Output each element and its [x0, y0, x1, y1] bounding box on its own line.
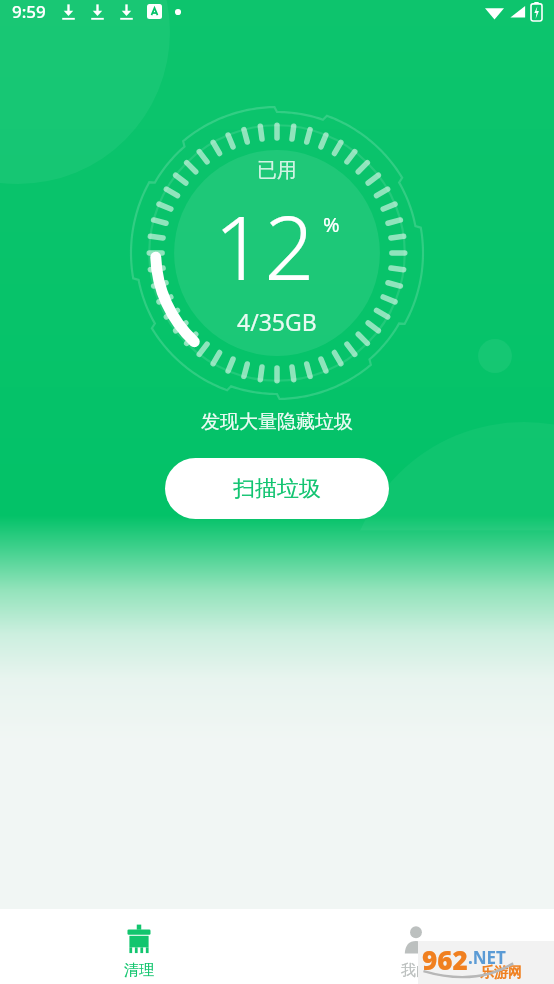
staticText: 清理: [124, 961, 154, 980]
staticText: 已用: [257, 158, 297, 183]
button[interactable]: 我的: [370, 912, 462, 982]
staticText: .NET: [468, 946, 506, 969]
button[interactable]: 清理: [93, 912, 185, 982]
staticText: 我的: [401, 961, 431, 980]
staticText: %: [323, 211, 340, 238]
staticText: 发现大量隐藏垃圾: [201, 410, 353, 434]
staticText: 4/35GB: [237, 306, 317, 337]
staticText: 乐游网: [480, 964, 522, 982]
staticText: 扫描垃圾: [233, 475, 321, 503]
staticText: 12: [214, 186, 315, 306]
button[interactable]: 扫描垃圾: [165, 458, 389, 519]
staticText: 962: [422, 942, 468, 977]
staticText: 9:59: [12, 0, 46, 23]
